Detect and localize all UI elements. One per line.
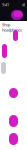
staticText: Shop headphones: [2, 22, 22, 33]
staticText: ıll: [22, 2, 25, 7]
staticText: 9:41: [2, 2, 9, 7]
